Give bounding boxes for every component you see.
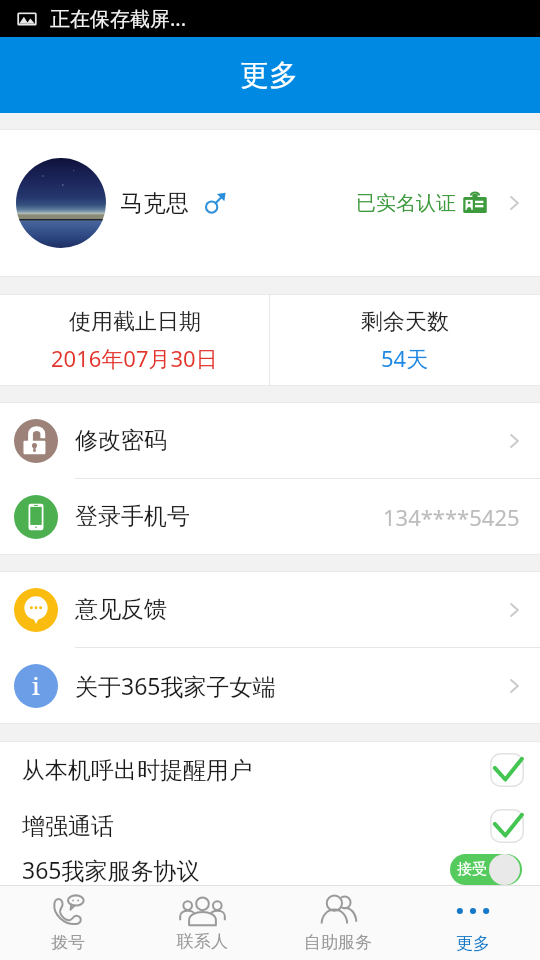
button[interactable]: 365我家服务协议	[0, 854, 540, 885]
staticText: 更多	[240, 57, 298, 94]
staticText: 2016年07月30日	[51, 343, 218, 373]
other: More	[455, 893, 491, 929]
staticText: 联系人	[177, 931, 228, 952]
button[interactable]: 拨号	[0, 886, 135, 960]
button[interactable]: 联系人	[135, 886, 270, 960]
other: Screenshot	[16, 8, 38, 30]
button[interactable]: 登录手机号	[0, 479, 540, 554]
button[interactable]: More	[405, 886, 540, 960]
button[interactable]: 修改密码	[0, 403, 540, 478]
staticText: 关于365我家子女端	[75, 670, 276, 701]
staticText: 134****5425	[383, 502, 520, 532]
staticText: 54天	[381, 343, 429, 373]
staticText: 修改密码	[75, 426, 167, 455]
staticText: 意见反馈	[75, 595, 167, 624]
staticText: 使用截止日期	[69, 308, 201, 336]
staticText: 登录手机号	[75, 502, 190, 531]
other: Toggle	[490, 753, 524, 787]
button[interactable]: 增强通话	[0, 798, 540, 854]
staticText: 更多	[456, 933, 490, 954]
staticText: i	[32, 669, 40, 702]
button[interactable]: 从本机呼出时提醒用户	[0, 742, 540, 798]
button[interactable]: i	[0, 648, 540, 723]
other: Toggle	[490, 809, 524, 843]
staticText: 正在保存截屏...	[50, 5, 187, 32]
staticText: 365我家服务协议	[22, 854, 200, 885]
staticText: 拨号	[51, 932, 85, 953]
staticText: 自助服务	[304, 932, 372, 953]
staticText: 剩余天数	[361, 308, 449, 336]
other: Male	[203, 191, 227, 215]
staticText: 接受	[457, 860, 487, 879]
button[interactable]: 马克思	[0, 130, 540, 276]
button[interactable]: 意见反馈	[0, 572, 540, 647]
staticText: 马克思	[120, 189, 189, 218]
staticText: 已实名认证	[356, 191, 456, 216]
staticText: 从本机呼出时提醒用户	[22, 756, 252, 785]
staticText: 增强通话	[22, 812, 114, 841]
button[interactable]: 自助服务	[270, 886, 405, 960]
